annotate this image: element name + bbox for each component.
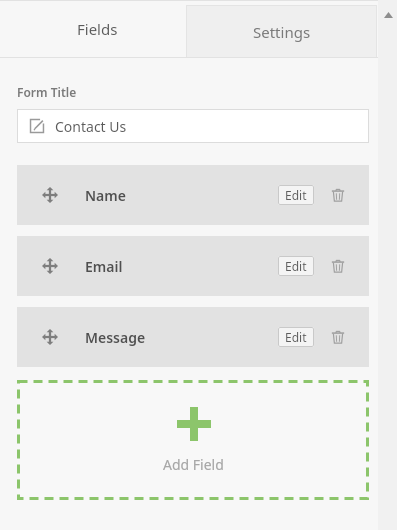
staticText: Contact Us bbox=[55, 117, 127, 136]
staticText: Add Field bbox=[163, 455, 224, 474]
staticText: Email bbox=[85, 257, 123, 276]
button[interactable]: Delete field bbox=[328, 185, 348, 205]
staticText: Settings bbox=[253, 22, 311, 42]
button[interactable]: Reorder field bbox=[39, 326, 61, 348]
staticText: Fields bbox=[77, 19, 118, 39]
button[interactable]: Contact Us bbox=[17, 109, 369, 143]
button[interactable]: Edit bbox=[278, 185, 314, 205]
staticText: Name bbox=[85, 186, 126, 205]
button[interactable]: Settings bbox=[186, 5, 377, 58]
staticText: Message bbox=[85, 328, 146, 347]
button[interactable]: Edit bbox=[278, 327, 314, 347]
staticText: Form Title bbox=[17, 84, 77, 100]
button[interactable]: Scroll up bbox=[381, 8, 395, 22]
button[interactable]: Edit bbox=[278, 256, 314, 276]
button[interactable]: Add Field bbox=[17, 380, 369, 500]
button[interactable]: Reorder field bbox=[17, 236, 369, 296]
button[interactable]: Reorder field bbox=[17, 165, 369, 225]
button[interactable]: Reorder field bbox=[17, 307, 369, 367]
button[interactable]: Reorder field bbox=[39, 255, 61, 277]
staticText: Edit bbox=[285, 258, 307, 274]
staticText: Edit bbox=[285, 329, 307, 345]
button[interactable]: Reorder field bbox=[39, 184, 61, 206]
button[interactable]: Delete field bbox=[328, 327, 348, 347]
button[interactable]: Fields bbox=[9, 0, 186, 58]
staticText: Edit bbox=[285, 187, 307, 203]
button[interactable]: Delete field bbox=[328, 256, 348, 276]
